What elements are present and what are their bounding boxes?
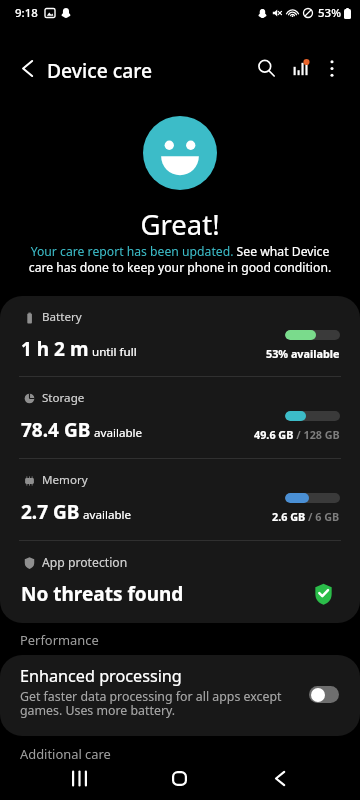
staticText: available: [83, 507, 132, 523]
staticText: Your care report has been updated. See w…: [24, 243, 336, 275]
button[interactable]: Usage statistics: [280, 48, 320, 88]
button[interactable]: Back: [255, 753, 305, 800]
button[interactable]: Home: [154, 753, 204, 800]
button[interactable]: Memory: [0, 459, 360, 540]
staticText: Storage: [42, 390, 85, 406]
staticText: 49.6 GB / 128 GB: [254, 427, 340, 442]
staticText: 9:18: [15, 5, 38, 21]
staticText: Performance: [20, 631, 99, 649]
staticText: 2.6 GB / 6 GB: [272, 509, 340, 524]
button[interactable]: Battery: [0, 296, 360, 376]
button[interactable]: More options: [312, 48, 352, 88]
staticText: Enhanced processing: [20, 665, 182, 687]
button[interactable]: Enhanced processing: [0, 655, 360, 736]
staticText: available: [94, 425, 143, 441]
button[interactable]: App protection: [0, 541, 360, 623]
staticText: No threats found: [21, 581, 184, 607]
staticText: Great!: [0, 206, 360, 243]
staticText: Device care: [47, 57, 153, 83]
button[interactable]: Storage: [0, 377, 360, 458]
staticText: 53%: [318, 5, 341, 21]
button[interactable]: Recents: [54, 753, 104, 800]
staticText: Additional care: [20, 745, 111, 763]
staticText: 1 h 2 m: [21, 336, 89, 362]
staticText: App protection: [42, 554, 128, 571]
button[interactable]: Enhanced processing toggle: [309, 686, 339, 703]
staticText: 2.7 GB: [21, 499, 80, 525]
button[interactable]: Search: [246, 48, 286, 88]
button[interactable]: Navigate up: [7, 48, 47, 88]
staticText: Get faster data processing for all apps …: [20, 688, 295, 718]
staticText: Memory: [42, 472, 88, 488]
staticText: until full: [92, 344, 137, 360]
staticText: 53% available: [266, 346, 340, 361]
staticText: 78.4 GB: [21, 417, 91, 443]
staticText: Battery: [42, 309, 82, 325]
